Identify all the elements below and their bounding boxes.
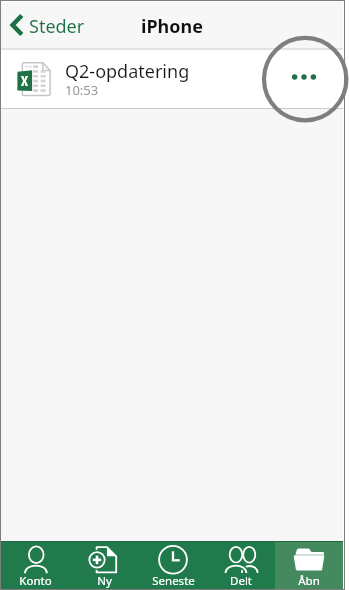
staticText: Seneste (152, 573, 195, 589)
button[interactable]: Recent (139, 541, 207, 589)
staticText: iPhone (141, 14, 203, 39)
staticText: Åbn (298, 573, 320, 589)
button[interactable]: New (70, 541, 139, 589)
staticText: Delt (230, 573, 252, 589)
staticText: Konto (19, 573, 52, 589)
button[interactable]: More options (275, 50, 333, 108)
button[interactable]: Account (1, 541, 70, 589)
button[interactable]: Steder (1, 2, 85, 48)
button[interactable]: Q2-opdatering (1, 50, 343, 108)
staticText: Steder (29, 14, 85, 39)
button[interactable]: Shared (207, 541, 275, 589)
button[interactable]: Open (275, 541, 343, 589)
staticText: Ny (97, 573, 112, 589)
staticText: Q2-opdatering (65, 59, 190, 84)
staticText: 10:53 (65, 81, 99, 99)
